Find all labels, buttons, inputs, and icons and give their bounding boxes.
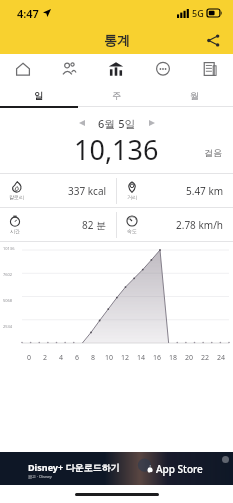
staticText: 2534	[3, 324, 13, 329]
button[interactable]: Disney+ 다운로드하기	[0, 452, 233, 485]
button[interactable]: 월	[155, 84, 233, 106]
staticText: 0	[27, 353, 32, 363]
staticText: 16	[153, 353, 162, 363]
button[interactable]: Chat	[139, 54, 186, 84]
staticText: 10136	[3, 246, 15, 251]
staticText: 5.47 km	[186, 184, 224, 198]
staticText: 5G	[192, 7, 204, 19]
button[interactable]: 시간	[0, 208, 116, 241]
button[interactable]: 속도	[117, 208, 233, 241]
button[interactable]: Home	[0, 54, 46, 84]
button[interactable]: Previous day	[74, 115, 90, 131]
staticText: 광고 · Disney	[28, 474, 52, 479]
button[interactable]: 일	[0, 84, 77, 106]
staticText: 10	[105, 353, 114, 363]
staticText: 4	[59, 353, 64, 363]
staticText: 시간	[10, 228, 20, 234]
staticText: 칼로리	[9, 194, 24, 200]
staticText: 주	[112, 90, 121, 101]
button[interactable]: Friends	[46, 54, 92, 84]
staticText: 12	[121, 353, 130, 363]
button[interactable]: 거리	[117, 174, 233, 207]
button[interactable]: Feed	[186, 54, 233, 84]
button[interactable]: Statistics	[92, 54, 139, 84]
staticText: 2.78 km/h	[176, 218, 224, 232]
staticText: 22	[201, 353, 210, 363]
staticText: 337 kcal	[68, 184, 107, 198]
button[interactable]: Next day	[144, 115, 160, 131]
staticText: 통계	[104, 32, 130, 48]
button[interactable]: 주	[77, 84, 155, 106]
staticText: 4:47	[17, 6, 39, 21]
staticText: 6	[75, 353, 80, 363]
staticText: 24	[217, 353, 226, 363]
staticText: 10,136	[74, 131, 159, 165]
staticText: 월	[190, 90, 199, 101]
button[interactable]: 칼로리	[0, 174, 116, 207]
staticText: 2	[43, 353, 48, 363]
staticText: 14	[137, 353, 146, 363]
staticText: 7602	[3, 272, 13, 277]
staticText: 속도	[127, 228, 137, 234]
staticText: 일	[34, 90, 43, 101]
staticText: 18	[169, 353, 178, 363]
staticText: 거리	[127, 194, 137, 200]
staticText: 82 분	[82, 218, 107, 232]
staticText: App Store	[156, 462, 203, 476]
staticText: 8	[91, 353, 96, 363]
button[interactable]: Close ad	[222, 456, 229, 463]
staticText: 5068	[3, 298, 13, 303]
staticText: 6월 5일	[98, 116, 136, 131]
staticText: 20	[185, 353, 194, 363]
staticText: Disney+ 다운로드하기	[28, 461, 120, 473]
button[interactable]: Share	[201, 28, 225, 52]
staticText: 걸음	[204, 147, 222, 158]
